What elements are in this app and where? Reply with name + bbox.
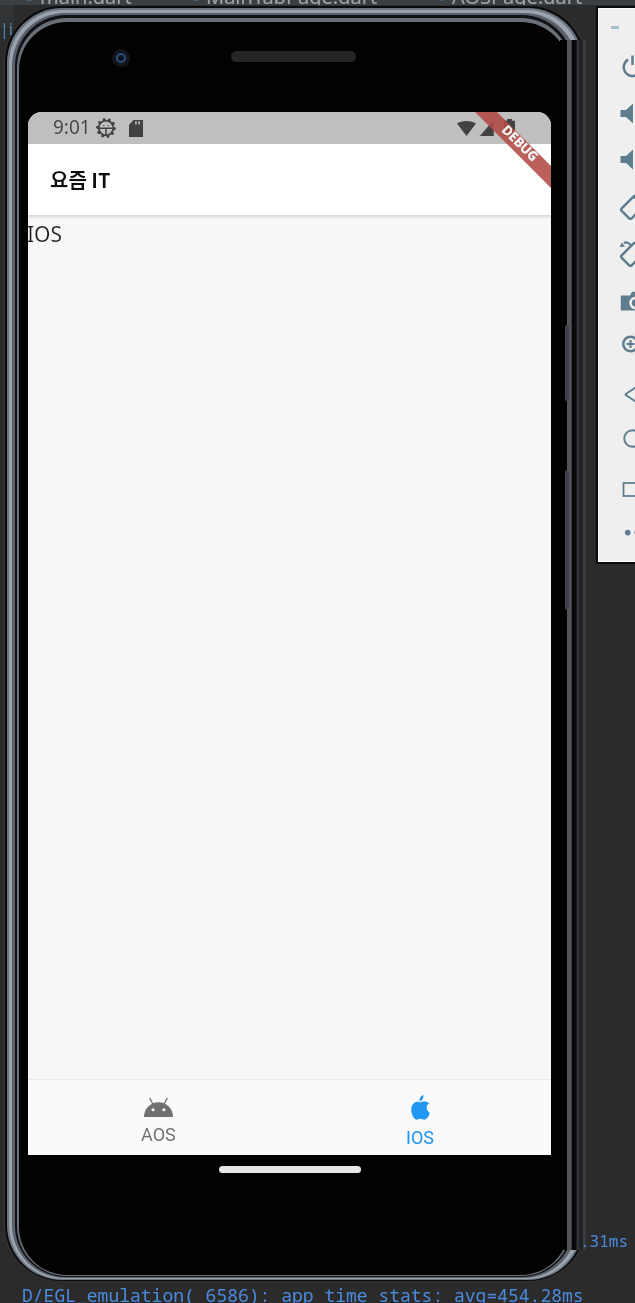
staticText: main.dart	[40, 0, 132, 5]
staticText: .31ms	[580, 1230, 629, 1252]
staticText: 요즘 IT	[50, 165, 111, 194]
button[interactable]: AOS	[28, 1080, 289, 1155]
staticText: |i	[0, 18, 13, 40]
button[interactable]: Overview	[616, 473, 635, 505]
staticText: IOS	[406, 1127, 434, 1148]
staticText: DEBUG	[498, 121, 543, 165]
button[interactable]: Rotate right	[616, 238, 635, 270]
staticText: AOSPage.dart	[452, 0, 583, 5]
button[interactable]: Volume down	[616, 143, 635, 175]
staticText: AOS	[141, 1124, 176, 1145]
button[interactable]: More	[616, 516, 635, 548]
button[interactable]: Volume up	[616, 97, 635, 129]
button[interactable]: IOS	[289, 1080, 551, 1155]
button[interactable]: Rotate left	[616, 191, 635, 223]
button[interactable]: Screenshot	[616, 285, 635, 317]
button[interactable]: Home	[616, 422, 635, 454]
staticText: MainTabPage.dart	[206, 0, 378, 5]
staticText: D/EGL_emulation( 6586): app time stats: …	[22, 1283, 584, 1303]
button[interactable]: Zoom	[616, 329, 635, 361]
staticText: 9:01	[53, 114, 91, 140]
staticText: IOS	[28, 220, 63, 249]
button[interactable]: Back	[616, 378, 635, 410]
button[interactable]: Power	[616, 50, 635, 82]
